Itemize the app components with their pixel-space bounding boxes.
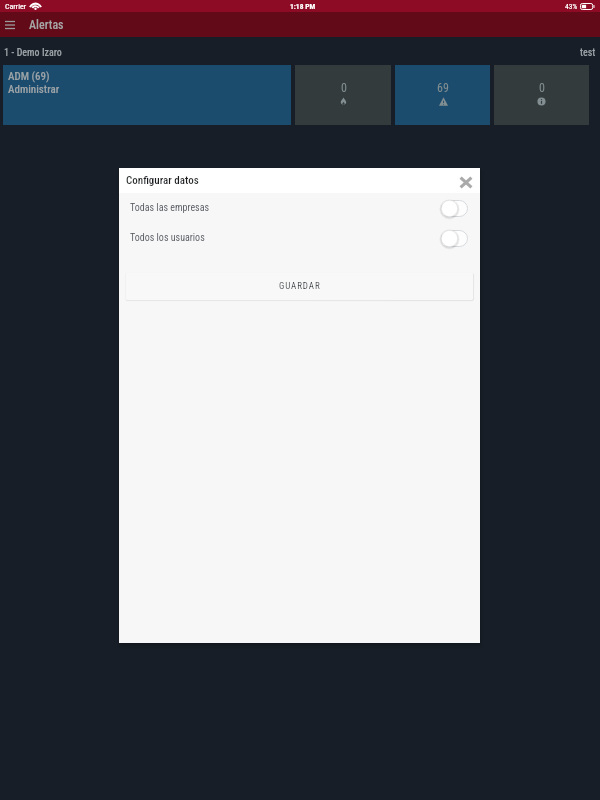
staticText: GUARDAR — [279, 281, 321, 292]
button[interactable]: Todas las empresas — [130, 193, 469, 223]
staticText: 0 — [539, 81, 545, 95]
staticText: 0 — [341, 81, 347, 95]
button[interactable]: 0 — [494, 65, 589, 125]
staticText: 69 — [437, 81, 449, 95]
button[interactable]: ADM (69) — [3, 65, 291, 125]
button[interactable]: Menu — [0, 12, 20, 37]
staticText: Carrier — [5, 2, 27, 11]
button[interactable]: 69 — [395, 65, 490, 125]
staticText: Alertas — [29, 18, 64, 32]
staticText: ADM (69) — [8, 70, 50, 83]
button[interactable]: Todos los usuarios — [130, 223, 469, 253]
staticText: 1 - Demo Izaro — [4, 47, 62, 59]
staticText: Configurar datos — [126, 174, 199, 187]
staticText: test — [580, 47, 596, 59]
staticText: 43% — [565, 2, 578, 11]
staticText: 1:18 PM — [290, 2, 316, 11]
staticText: Todas las empresas — [130, 202, 209, 214]
staticText: Todos los usuarios — [130, 232, 205, 244]
button[interactable]: GUARDAR — [126, 273, 473, 300]
button[interactable]: 0 — [295, 65, 391, 125]
staticText: Administrar — [8, 83, 60, 96]
button[interactable]: Cerrar — [456, 172, 476, 192]
